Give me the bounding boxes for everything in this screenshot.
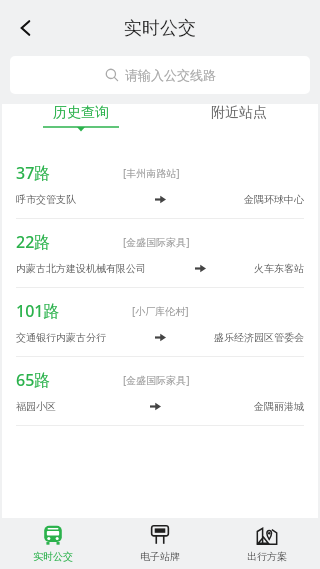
staticText: 呼市交管支队 [16, 193, 76, 206]
staticText: 福园小区 [16, 400, 56, 413]
staticText: 金隅环球中心 [244, 193, 304, 206]
button[interactable]: 实时公交 [0, 519, 106, 568]
staticText: 内蒙古北方建设机械有限公司 [16, 262, 146, 275]
staticText: 出行方案 [247, 550, 287, 563]
button[interactable]: 22路 [2, 219, 318, 287]
button[interactable]: 请输入公交线路 [10, 56, 310, 94]
staticText: 101路 [16, 300, 60, 322]
staticText: [金盛国际家具] [123, 373, 190, 387]
staticText: 电子站牌 [140, 550, 180, 563]
button[interactable]: Back [4, 6, 48, 50]
staticText: 请输入公交线路 [125, 67, 216, 83]
staticText: 37路 [16, 162, 51, 184]
button[interactable]: 附近站点 [160, 104, 318, 133]
button[interactable]: 37路 [2, 150, 318, 218]
staticText: 附近站点 [211, 104, 267, 122]
staticText: [小厂库伦村] [132, 304, 189, 318]
staticText: [丰州南路站] [123, 166, 180, 180]
button[interactable]: 出行方案 [213, 519, 320, 568]
button[interactable]: 101路 [2, 288, 318, 356]
staticText: 22路 [16, 231, 51, 253]
staticText: [金盛国际家具] [123, 235, 190, 249]
staticText: 盛乐经济园区管委会 [214, 331, 304, 344]
staticText: 实时公交 [124, 17, 196, 40]
staticText: 火车东客站 [254, 262, 304, 275]
staticText: 交通银行内蒙古分行 [16, 331, 106, 344]
staticText: 实时公交 [33, 550, 73, 563]
button[interactable]: 电子站牌 [106, 519, 213, 568]
staticText: 金隅丽港城 [254, 400, 304, 413]
staticText: 65路 [16, 369, 51, 391]
staticText: 历史查询 [53, 104, 109, 122]
button[interactable]: 65路 [2, 357, 318, 425]
button[interactable]: 历史查询 [2, 104, 160, 133]
